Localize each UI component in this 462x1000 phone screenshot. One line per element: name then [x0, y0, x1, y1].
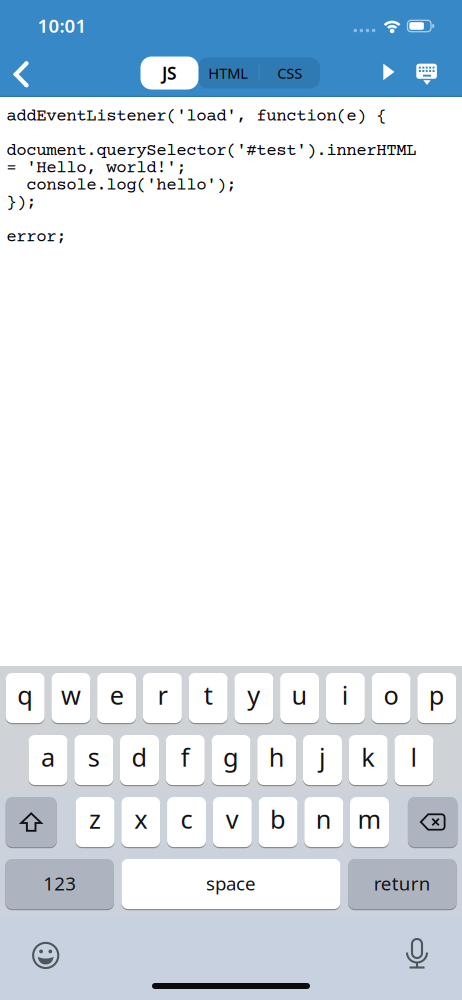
- staticText: JS: [162, 61, 177, 84]
- button[interactable]: Delete: [408, 797, 457, 847]
- button[interactable]: Emoji: [32, 942, 59, 969]
- button[interactable]: JS: [140, 56, 198, 89]
- staticText: w: [61, 678, 81, 712]
- button[interactable]: g: [211, 735, 250, 785]
- staticText: s: [88, 740, 100, 774]
- staticText: console.log('hello');: [6, 176, 236, 195]
- staticText: });: [6, 193, 36, 213]
- staticText: 10:01: [37, 13, 86, 38]
- button[interactable]: d: [120, 735, 159, 785]
- button[interactable]: Shift: [6, 797, 57, 847]
- button[interactable]: w: [51, 673, 90, 723]
- button[interactable]: space: [121, 859, 340, 909]
- button[interactable]: y: [234, 673, 273, 723]
- button[interactable]: j: [303, 735, 342, 785]
- button[interactable]: b: [258, 797, 297, 847]
- button[interactable]: m: [350, 797, 389, 847]
- staticText: m: [357, 802, 381, 836]
- staticText: f: [181, 740, 190, 774]
- button[interactable]: o: [372, 673, 411, 723]
- button[interactable]: Back: [4, 52, 48, 96]
- staticText: error;: [6, 228, 66, 247]
- staticText: x: [134, 802, 147, 836]
- staticText: o: [384, 678, 399, 712]
- button[interactable]: p: [417, 673, 456, 723]
- button[interactable]: 123: [5, 859, 114, 909]
- button[interactable]: Dismiss Keyboard: [404, 52, 446, 96]
- button[interactable]: k: [349, 735, 388, 785]
- staticText: t: [204, 678, 213, 712]
- staticText: d: [131, 740, 147, 774]
- staticText: g: [223, 740, 239, 774]
- staticText: e: [110, 678, 124, 712]
- button[interactable]: n: [304, 797, 343, 847]
- button[interactable]: l: [394, 735, 433, 785]
- staticText: v: [226, 802, 239, 836]
- button[interactable]: r: [143, 673, 182, 723]
- button[interactable]: s: [74, 735, 113, 785]
- button[interactable]: Dictate: [406, 940, 428, 971]
- staticText: document.querySelector('#test').innerHTM…: [6, 141, 416, 161]
- staticText: j: [319, 740, 326, 774]
- staticText: 123: [43, 871, 76, 896]
- staticText: k: [361, 740, 375, 774]
- staticText: r: [157, 678, 167, 712]
- staticText: n: [316, 802, 332, 836]
- button[interactable]: a: [28, 735, 67, 785]
- staticText: l: [410, 740, 417, 774]
- button[interactable]: u: [280, 673, 319, 723]
- button[interactable]: c: [167, 797, 206, 847]
- staticText: p: [429, 678, 445, 712]
- button[interactable]: v: [213, 797, 252, 847]
- button[interactable]: i: [326, 673, 365, 723]
- staticText: y: [247, 678, 260, 712]
- staticText: addEventListener('load', function(e) {: [6, 107, 386, 126]
- button[interactable]: t: [189, 673, 228, 723]
- staticText: q: [17, 678, 33, 712]
- button[interactable]: x: [121, 797, 160, 847]
- staticText: CSS: [277, 63, 302, 83]
- staticText: = 'Hello, world!';: [6, 159, 186, 178]
- button[interactable]: Run: [369, 52, 409, 92]
- staticText: i: [342, 678, 349, 712]
- button[interactable]: f: [166, 735, 205, 785]
- staticText: u: [292, 678, 308, 712]
- staticText: HTML: [208, 63, 248, 83]
- staticText: h: [269, 740, 285, 774]
- button[interactable]: return: [348, 859, 457, 909]
- button[interactable]: e: [97, 673, 136, 723]
- button[interactable]: h: [257, 735, 296, 785]
- staticText: a: [41, 740, 55, 774]
- button[interactable]: z: [76, 797, 115, 847]
- staticText: z: [89, 802, 101, 836]
- button[interactable]: HTML: [198, 57, 258, 88]
- staticText: return: [374, 871, 431, 896]
- staticText: c: [181, 802, 193, 836]
- button[interactable]: q: [6, 673, 45, 723]
- staticText: space: [206, 871, 256, 896]
- staticText: b: [270, 802, 286, 836]
- button[interactable]: CSS: [259, 57, 320, 88]
